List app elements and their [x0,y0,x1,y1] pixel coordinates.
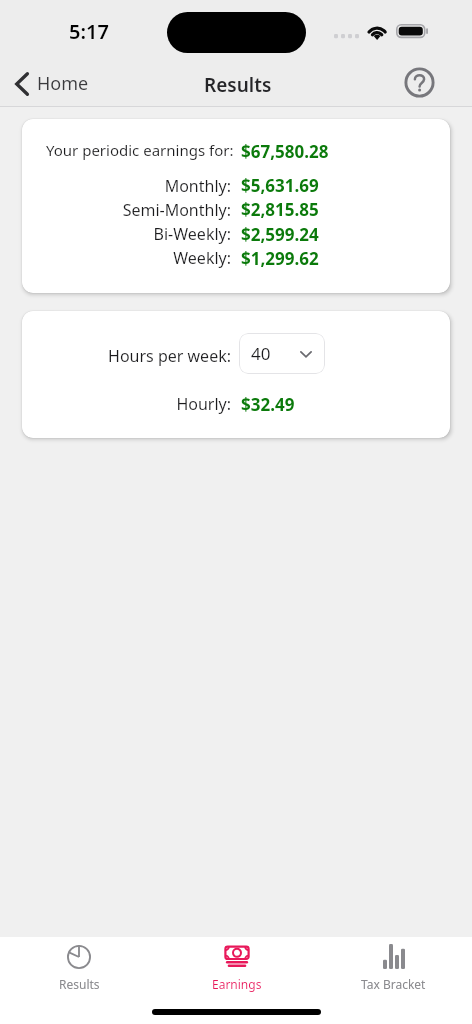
staticText: $1,299.62 [241,247,319,270]
staticText: $67,580.28 [241,140,329,163]
button[interactable]: Results [0,937,158,997]
staticText: Results [204,72,272,98]
staticText: Hourly: [22,393,231,415]
button[interactable]: Home [6,63,103,104]
staticText: 5:17 [69,18,109,45]
button[interactable]: Tax Bracket [315,937,472,997]
button[interactable]: Help [401,64,438,101]
staticText: $2,815.85 [241,198,319,221]
staticText: Bi-Weekly: [22,223,231,245]
staticText: $32.49 [241,393,295,416]
staticText: Hours per week: [22,345,231,367]
staticText: Weekly: [22,247,231,269]
button[interactable]: Earnings [158,937,315,997]
staticText: Earnings [212,976,262,992]
staticText: Tax Bracket [361,976,426,992]
staticText: Results [59,976,100,992]
staticText: 40 [251,342,271,365]
button[interactable]: 40 [239,333,325,374]
staticText: Your periodic earnings for: [46,140,234,160]
staticText: $5,631.69 [241,174,319,197]
staticText: Home [37,71,89,96]
staticText: Semi-Monthly: [22,199,231,221]
staticText: Monthly: [22,175,231,197]
staticText: $2,599.24 [241,223,319,246]
